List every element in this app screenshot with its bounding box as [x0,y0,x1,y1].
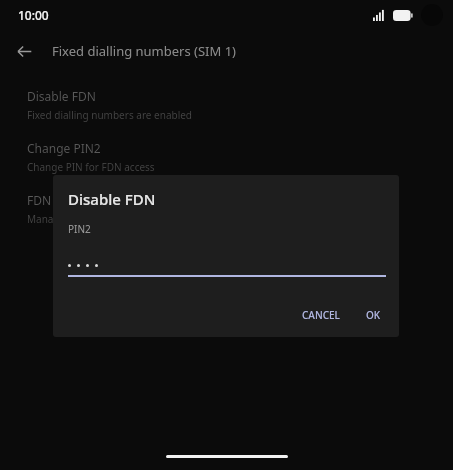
button[interactable]: Change PIN2 [0,138,453,176]
button[interactable]: FDN list [0,190,453,228]
staticText: Change PIN2 [27,140,101,156]
staticText: Manage phone number list [27,212,155,226]
staticText: FDN list [27,192,71,208]
staticText: PIN2 [68,222,91,236]
button[interactable]: OK [360,303,387,327]
staticText: Disable FDN [68,189,156,209]
staticText: Fixed dialling numbers are enabled [27,108,193,122]
staticText: OK [366,308,381,322]
staticText: Fixed dialling numbers (SIM 1) [52,42,237,60]
staticText: CANCEL [302,308,340,322]
staticText: Change PIN for FDN access [27,160,155,174]
staticText: Disable FDN [27,88,96,104]
button[interactable]: CANCEL [296,303,346,327]
button[interactable]: Disable FDN [0,86,453,124]
button[interactable]: Back [8,35,40,67]
staticText: 10:00 [18,7,49,23]
